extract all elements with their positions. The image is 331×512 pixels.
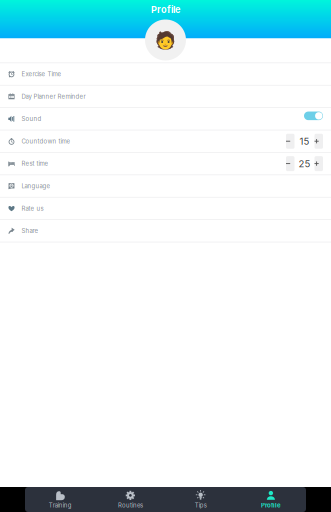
button[interactable]: Decrease (286, 156, 294, 171)
button[interactable]: Decrease (286, 134, 294, 149)
button[interactable]: Share (0, 220, 331, 242)
staticText: Routines (118, 502, 143, 509)
staticText: Profile (261, 502, 281, 509)
button[interactable]: Profile (236, 487, 306, 512)
staticText: Day Planner Reminder (22, 93, 86, 100)
button[interactable]: Day Planner Reminder (0, 86, 331, 107)
staticText: 25 (298, 158, 310, 169)
staticText: Countdown time (22, 138, 71, 145)
button[interactable]: Exercise Time (0, 63, 331, 85)
staticText: Rate us (22, 205, 44, 212)
button[interactable]: Countdown time (0, 130, 331, 152)
button[interactable]: Routines (95, 487, 165, 512)
staticText: Tips (195, 502, 207, 509)
button[interactable]: Increase (314, 156, 323, 171)
staticText: Language (22, 182, 51, 190)
button[interactable]: Tips (165, 487, 236, 512)
staticText: Exercise Time (22, 70, 62, 78)
button[interactable]: Sound toggle (304, 114, 323, 123)
staticText: Rest time (22, 160, 49, 167)
button[interactable]: Rate us (0, 198, 331, 219)
button[interactable]: Rest time (0, 153, 331, 174)
staticText: 🧑 (155, 30, 176, 50)
button[interactable]: Sound (0, 108, 331, 130)
staticText: Profile (151, 4, 180, 15)
staticText: Share (22, 227, 39, 234)
button[interactable]: Language (0, 175, 331, 197)
staticText: 15 (299, 135, 309, 147)
staticText: Training (49, 502, 72, 509)
button[interactable]: Increase (314, 134, 323, 149)
staticText: Sound (22, 115, 42, 122)
button[interactable]: Training (25, 487, 95, 512)
